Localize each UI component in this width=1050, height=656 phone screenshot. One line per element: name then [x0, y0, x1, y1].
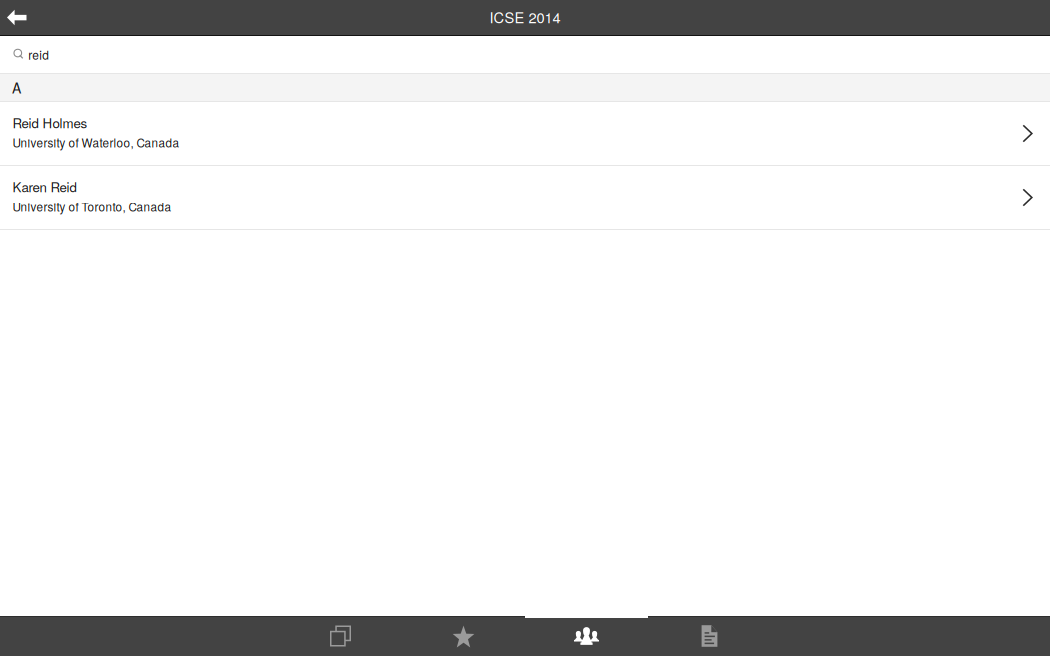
button[interactable]: Papers: [648, 616, 771, 656]
button[interactable]: Sessions: [279, 616, 402, 656]
staticText: University of Toronto, Canada: [13, 198, 172, 215]
staticText: ICSE 2014: [489, 6, 560, 27]
staticText: A: [12, 77, 21, 97]
staticText: University of Waterloo, Canada: [13, 134, 180, 151]
staticText: Karen Reid: [13, 177, 77, 196]
button[interactable]: Reid Holmes: [0, 102, 1050, 166]
button[interactable]: People: [525, 616, 648, 656]
button[interactable]: Favorites: [402, 616, 525, 656]
staticText: reid: [28, 46, 49, 63]
staticText: Reid Holmes: [13, 113, 88, 132]
button[interactable]: Karen Reid: [0, 166, 1050, 230]
button[interactable]: Back: [0, 0, 36, 35]
button[interactable]: reid: [0, 36, 1050, 73]
